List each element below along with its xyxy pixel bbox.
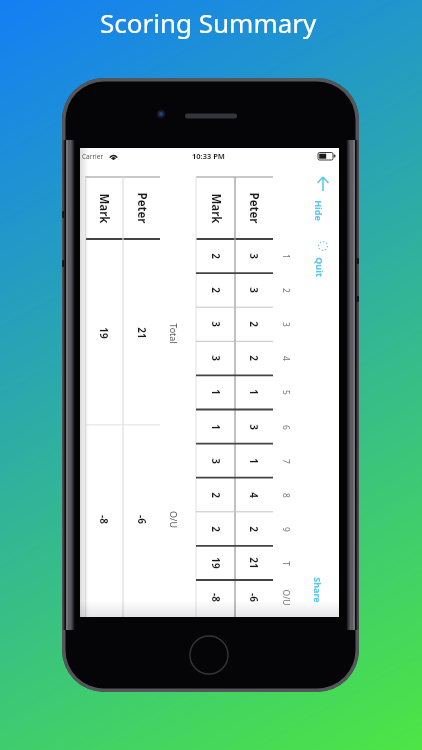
staticText: 2 <box>280 288 292 293</box>
button[interactable]: 3 <box>196 341 235 375</box>
staticText: 1 <box>280 254 292 259</box>
staticText: -8 <box>209 593 223 602</box>
button[interactable]: 2 <box>196 478 235 512</box>
staticText: O/U <box>168 511 180 528</box>
staticText: O/U <box>280 589 292 606</box>
button[interactable]: 3 <box>235 410 273 444</box>
staticText: 4 <box>247 492 261 498</box>
button[interactable]: 2 <box>235 307 273 341</box>
staticText: 9 <box>280 527 292 532</box>
button[interactable]: 2 <box>235 512 273 546</box>
button[interactable]: 3 <box>235 239 273 273</box>
button[interactable]: 1 <box>235 444 273 478</box>
button[interactable]: 4 <box>235 478 273 512</box>
button[interactable]: 2 <box>196 273 235 307</box>
button[interactable]: 21 <box>235 546 273 580</box>
staticText: 1 <box>247 389 261 395</box>
staticText: 3 <box>280 322 292 327</box>
staticText: 2 <box>247 321 261 327</box>
button[interactable]: 1 <box>196 410 235 444</box>
staticText: -6 <box>247 593 261 602</box>
staticText: 7 <box>280 459 292 464</box>
staticText: 1 <box>209 389 223 395</box>
staticText: 3 <box>209 458 223 464</box>
staticText: 2 <box>209 526 223 532</box>
staticText: 8 <box>280 493 292 498</box>
staticText: T <box>280 561 292 566</box>
staticText: 3 <box>247 253 261 259</box>
button[interactable]: 2 <box>196 512 235 546</box>
staticText: Mark <box>208 193 224 224</box>
staticText: Share <box>312 577 324 603</box>
staticText: 6 <box>280 425 292 430</box>
button[interactable]: 19 <box>196 546 235 580</box>
button[interactable]: Quit <box>307 238 339 286</box>
staticText: Hide <box>313 200 325 221</box>
button[interactable]: -6 <box>235 580 273 614</box>
button[interactable]: 2 <box>196 239 235 273</box>
staticText: 5 <box>280 390 292 395</box>
button[interactable]: -8 <box>196 580 235 614</box>
staticText: Quit <box>314 257 326 277</box>
button[interactable]: 3 <box>196 307 235 341</box>
staticText: 2 <box>247 355 261 361</box>
button[interactable]: 3 <box>196 444 235 478</box>
staticText: Peter <box>246 192 262 224</box>
staticText: -6 <box>135 515 149 524</box>
staticText: Scoring Summary <box>100 5 317 40</box>
staticText: -8 <box>97 515 111 524</box>
button[interactable]: 1 <box>196 375 235 409</box>
staticText: 4 <box>280 356 292 361</box>
staticText: 21 <box>247 557 261 569</box>
button[interactable]: 1 <box>235 375 273 409</box>
staticText: Carrier <box>82 152 104 161</box>
staticText: 2 <box>209 287 223 293</box>
button[interactable]: Hide <box>307 172 339 228</box>
staticText: 2 <box>247 526 261 532</box>
staticText: 19 <box>209 557 223 569</box>
staticText: Mark <box>96 193 112 224</box>
button[interactable]: 2 <box>235 341 273 375</box>
staticText: 1 <box>209 424 223 430</box>
staticText: 3 <box>247 287 261 293</box>
staticText: 1 <box>247 458 261 464</box>
button[interactable]: 3 <box>235 273 273 307</box>
button[interactable]: Share <box>307 572 339 608</box>
staticText: 3 <box>209 355 223 361</box>
staticText: Peter <box>134 192 150 224</box>
staticText: 3 <box>209 321 223 327</box>
staticText: 2 <box>209 253 223 259</box>
staticText: 3 <box>247 424 261 430</box>
staticText: 21 <box>135 327 149 339</box>
staticText: 19 <box>97 327 111 339</box>
staticText: 10:33 PM <box>192 151 225 161</box>
staticText: 2 <box>209 492 223 498</box>
staticText: Total <box>168 323 180 344</box>
